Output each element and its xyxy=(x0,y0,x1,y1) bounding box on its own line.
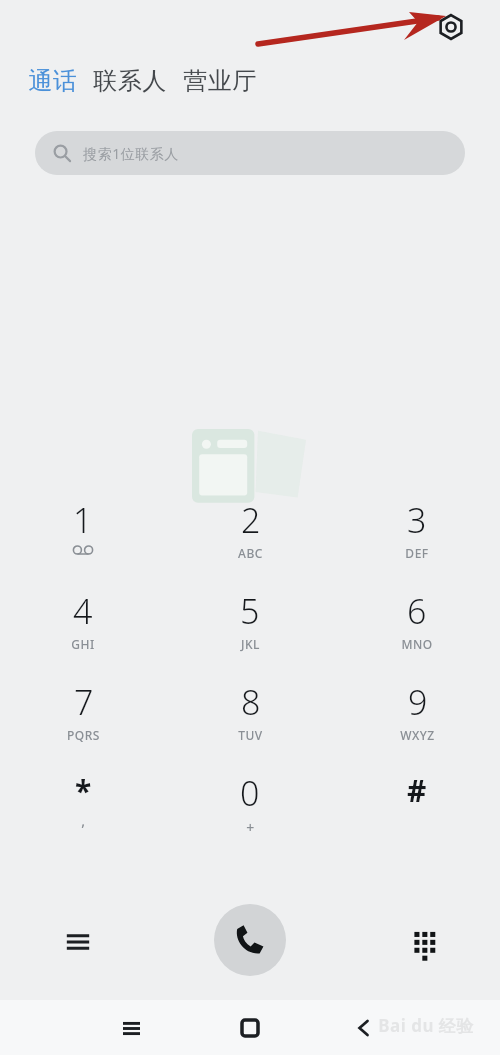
button[interactable]: Recents xyxy=(113,1010,149,1046)
staticText: 9 xyxy=(408,679,428,725)
button[interactable]: Dialpad xyxy=(395,913,453,971)
button[interactable]: Settings xyxy=(430,6,472,48)
staticText: 8 xyxy=(241,679,261,725)
staticText: 通话 xyxy=(28,66,77,96)
button[interactable]: Call log xyxy=(49,913,107,971)
button[interactable]: Home xyxy=(232,1010,268,1046)
staticText: DEF xyxy=(405,545,429,561)
staticText: WXYZ xyxy=(400,727,435,743)
staticText: Bai du 经验 xyxy=(378,1014,474,1037)
button[interactable]: 7 xyxy=(28,679,138,767)
staticText: 7 xyxy=(74,679,94,725)
button[interactable]: 0 xyxy=(195,770,305,858)
staticText: 搜索1位联系人 xyxy=(83,144,179,163)
button[interactable]: 联系人 xyxy=(93,66,167,96)
staticText: MNO xyxy=(401,636,433,652)
button[interactable]: 搜索1位联系人 xyxy=(35,131,465,175)
button[interactable]: 9 xyxy=(362,679,472,767)
staticText: PQRS xyxy=(67,727,100,743)
staticText: 4 xyxy=(73,588,93,634)
button[interactable]: 4 xyxy=(28,588,138,676)
button[interactable]: 营业厅 xyxy=(183,66,257,96)
staticText: # xyxy=(407,770,427,811)
button[interactable]: 8 xyxy=(195,679,305,767)
staticText: + xyxy=(246,818,255,837)
staticText: GHI xyxy=(71,636,95,652)
button[interactable]: 2 xyxy=(195,497,305,585)
staticText: 联系人 xyxy=(93,66,167,96)
button[interactable]: 1 xyxy=(28,497,138,585)
button[interactable]: 3 xyxy=(362,497,472,585)
staticText: 1 xyxy=(73,497,93,543)
button[interactable]: 通话 xyxy=(28,66,77,96)
staticText: JKL xyxy=(241,636,260,652)
staticText: TUV xyxy=(238,727,263,743)
button[interactable]: 6 xyxy=(362,588,472,676)
staticText: 3 xyxy=(407,497,427,543)
staticText: * xyxy=(75,770,92,811)
button[interactable]: 5 xyxy=(195,588,305,676)
staticText: 6 xyxy=(407,588,427,634)
staticText: 0 xyxy=(240,770,260,816)
staticText: 营业厅 xyxy=(183,66,257,96)
staticText: , xyxy=(81,811,86,830)
staticText: 2 xyxy=(241,497,261,543)
button[interactable]: # xyxy=(362,770,472,858)
button[interactable]: Back xyxy=(346,1010,382,1046)
button[interactable]: * xyxy=(28,770,138,858)
button[interactable]: Call xyxy=(214,904,286,976)
staticText: ABC xyxy=(238,545,263,561)
staticText: 5 xyxy=(240,588,260,634)
